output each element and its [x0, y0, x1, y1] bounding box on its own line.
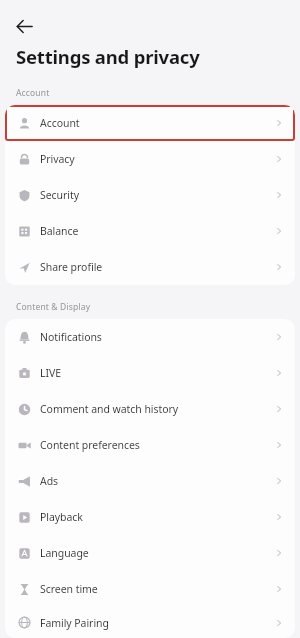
staticText: Ads: [40, 474, 274, 488]
button[interactable]: Privacy: [5, 141, 295, 177]
staticText: Family Pairing: [40, 616, 274, 630]
staticText: Balance: [40, 224, 274, 238]
staticText: Content preferences: [40, 438, 274, 452]
staticText: Content & Display: [16, 301, 91, 313]
button[interactable]: Playback: [5, 499, 295, 535]
staticText: Account: [16, 87, 50, 99]
button[interactable]: Comment and watch history: [5, 391, 295, 427]
button[interactable]: Screen time: [5, 571, 295, 607]
button[interactable]: Ads: [5, 463, 295, 499]
staticText: Screen time: [40, 582, 274, 596]
button[interactable]: Language: [5, 535, 295, 571]
staticText: Language: [40, 546, 274, 560]
staticText: Share profile: [40, 260, 274, 274]
button[interactable]: Security: [5, 177, 295, 213]
staticText: Notifications: [40, 330, 274, 344]
staticText: Playback: [40, 510, 274, 524]
staticText: Security: [40, 188, 274, 202]
staticText: Account: [40, 116, 274, 130]
staticText: Privacy: [40, 152, 274, 166]
button[interactable]: Balance: [5, 213, 295, 249]
staticText: Comment and watch history: [40, 402, 274, 416]
button[interactable]: Content preferences: [5, 427, 295, 463]
staticText: LIVE: [40, 366, 274, 380]
button[interactable]: Account: [5, 105, 295, 141]
button[interactable]: Notifications: [5, 319, 295, 355]
button[interactable]: Family Pairing: [5, 607, 295, 638]
button[interactable]: Share profile: [5, 249, 295, 285]
staticText: Settings and privacy: [16, 44, 200, 69]
button[interactable]: Back: [9, 11, 39, 41]
button[interactable]: LIVE: [5, 355, 295, 391]
